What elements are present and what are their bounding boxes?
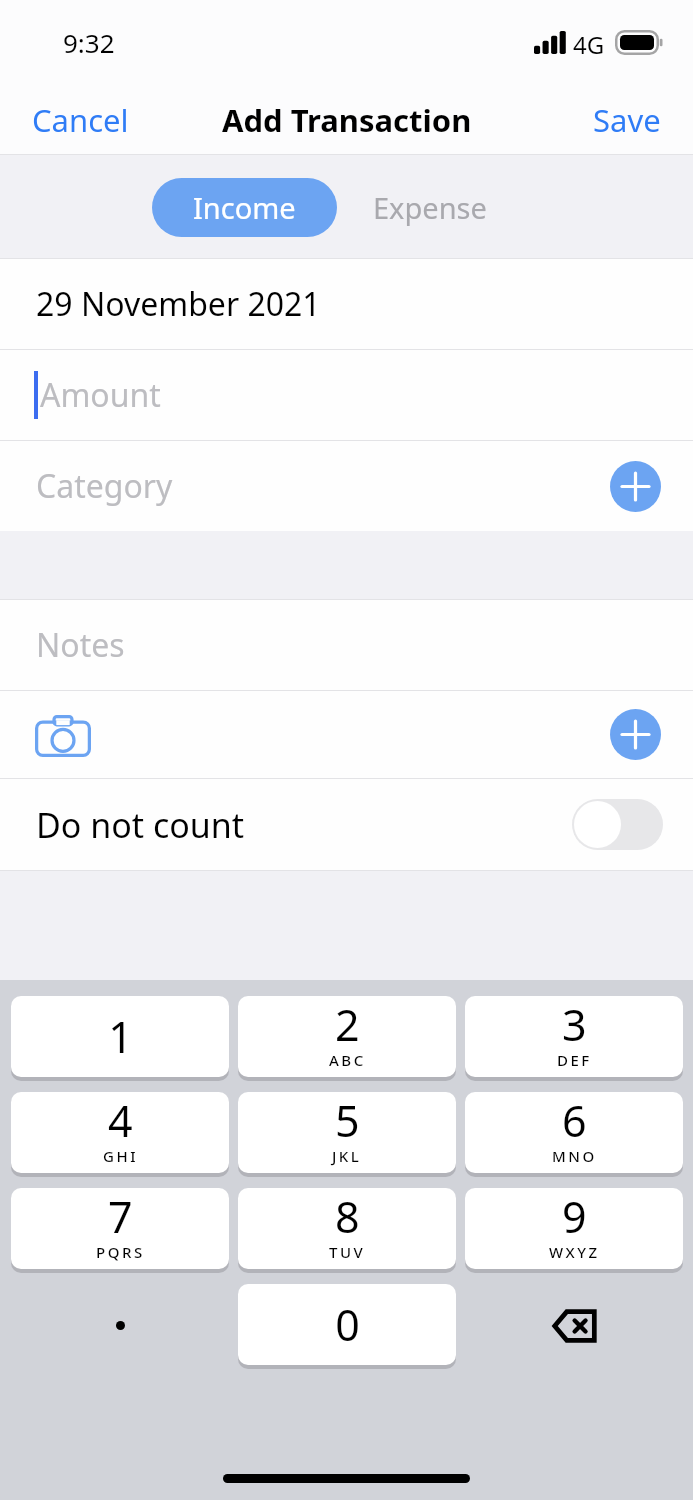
staticText: 0 bbox=[335, 1295, 360, 1354]
button[interactable]: Cancel bbox=[18, 91, 143, 149]
button[interactable]: Save bbox=[579, 91, 675, 149]
button[interactable]: Category bbox=[0, 441, 693, 531]
staticText: 6 bbox=[562, 1092, 587, 1150]
staticText: Cancel bbox=[32, 99, 129, 141]
button[interactable]: Income bbox=[152, 178, 337, 237]
staticText: MNO bbox=[552, 1146, 597, 1166]
staticText: DEF bbox=[557, 1050, 592, 1070]
staticText: 8 bbox=[335, 1188, 360, 1246]
staticText: JKL bbox=[332, 1146, 362, 1166]
button[interactable]: 4 bbox=[11, 1092, 229, 1175]
button[interactable]: Amount bbox=[0, 350, 693, 440]
button[interactable]: Do not count bbox=[0, 779, 693, 870]
button[interactable]: Expense bbox=[337, 178, 522, 237]
staticText: GHI bbox=[103, 1146, 138, 1166]
staticText: Income bbox=[193, 188, 296, 227]
staticText: 5 bbox=[335, 1092, 360, 1150]
staticText: 1 bbox=[108, 1007, 133, 1066]
staticText: 4G bbox=[573, 28, 605, 61]
button[interactable]: 0 bbox=[238, 1284, 456, 1367]
button[interactable]: Add photo bbox=[610, 709, 661, 760]
button[interactable]: Decimal point bbox=[11, 1284, 229, 1367]
button[interactable]: Add category bbox=[610, 461, 661, 512]
button[interactable]: 1 bbox=[11, 996, 229, 1079]
staticText: 4 bbox=[108, 1092, 133, 1150]
button[interactable]: 2 bbox=[238, 996, 456, 1079]
button[interactable]: Notes bbox=[0, 600, 693, 690]
staticText: Amount bbox=[40, 373, 161, 417]
staticText: PQRS bbox=[96, 1242, 145, 1262]
button[interactable]: Do not count toggle bbox=[572, 799, 663, 850]
staticText: Notes bbox=[36, 623, 125, 667]
staticText: 2 bbox=[335, 996, 360, 1054]
staticText: ABC bbox=[329, 1050, 366, 1070]
staticText: Category bbox=[36, 464, 173, 508]
button[interactable]: 5 bbox=[238, 1092, 456, 1175]
staticText: 29 November 2021 bbox=[36, 282, 321, 326]
staticText: 9 bbox=[562, 1188, 587, 1246]
staticText: 7 bbox=[108, 1188, 133, 1246]
button[interactable]: 3 bbox=[465, 996, 683, 1079]
button[interactable]: 8 bbox=[238, 1188, 456, 1271]
staticText: Add Transaction bbox=[222, 99, 472, 141]
staticText: 9:32 bbox=[63, 25, 115, 60]
button[interactable]: 6 bbox=[465, 1092, 683, 1175]
button[interactable]: 7 bbox=[11, 1188, 229, 1271]
staticText: Expense bbox=[373, 188, 487, 227]
staticText: Do not count bbox=[36, 802, 245, 848]
button[interactable]: Backspace bbox=[465, 1284, 683, 1367]
button[interactable]: 29 November 2021 bbox=[0, 259, 693, 349]
staticText: TUV bbox=[329, 1242, 366, 1262]
button[interactable]: Take photo bbox=[30, 702, 96, 768]
staticText: Save bbox=[593, 99, 661, 141]
staticText: WXYZ bbox=[549, 1242, 600, 1262]
button[interactable]: 9 bbox=[465, 1188, 683, 1271]
staticText: 3 bbox=[562, 996, 587, 1054]
